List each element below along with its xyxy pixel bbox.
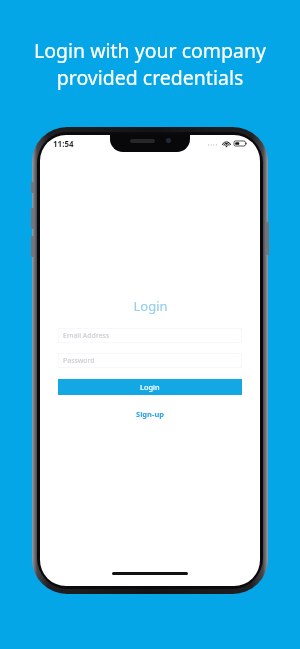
staticText: Password (63, 356, 95, 366)
staticText: 11:54 (53, 138, 74, 149)
staticText: Login (133, 297, 168, 315)
button[interactable]: Sign-up (130, 407, 171, 421)
staticText: provided credentials (0, 64, 300, 91)
button[interactable]: Password (58, 353, 242, 368)
staticText: Sign-up (136, 409, 165, 419)
staticText: Login (140, 382, 160, 392)
button[interactable]: Login (58, 379, 242, 395)
staticText: Login with your company (0, 37, 300, 64)
button[interactable]: Email Address (58, 328, 242, 343)
staticText: Email Address (63, 331, 110, 341)
